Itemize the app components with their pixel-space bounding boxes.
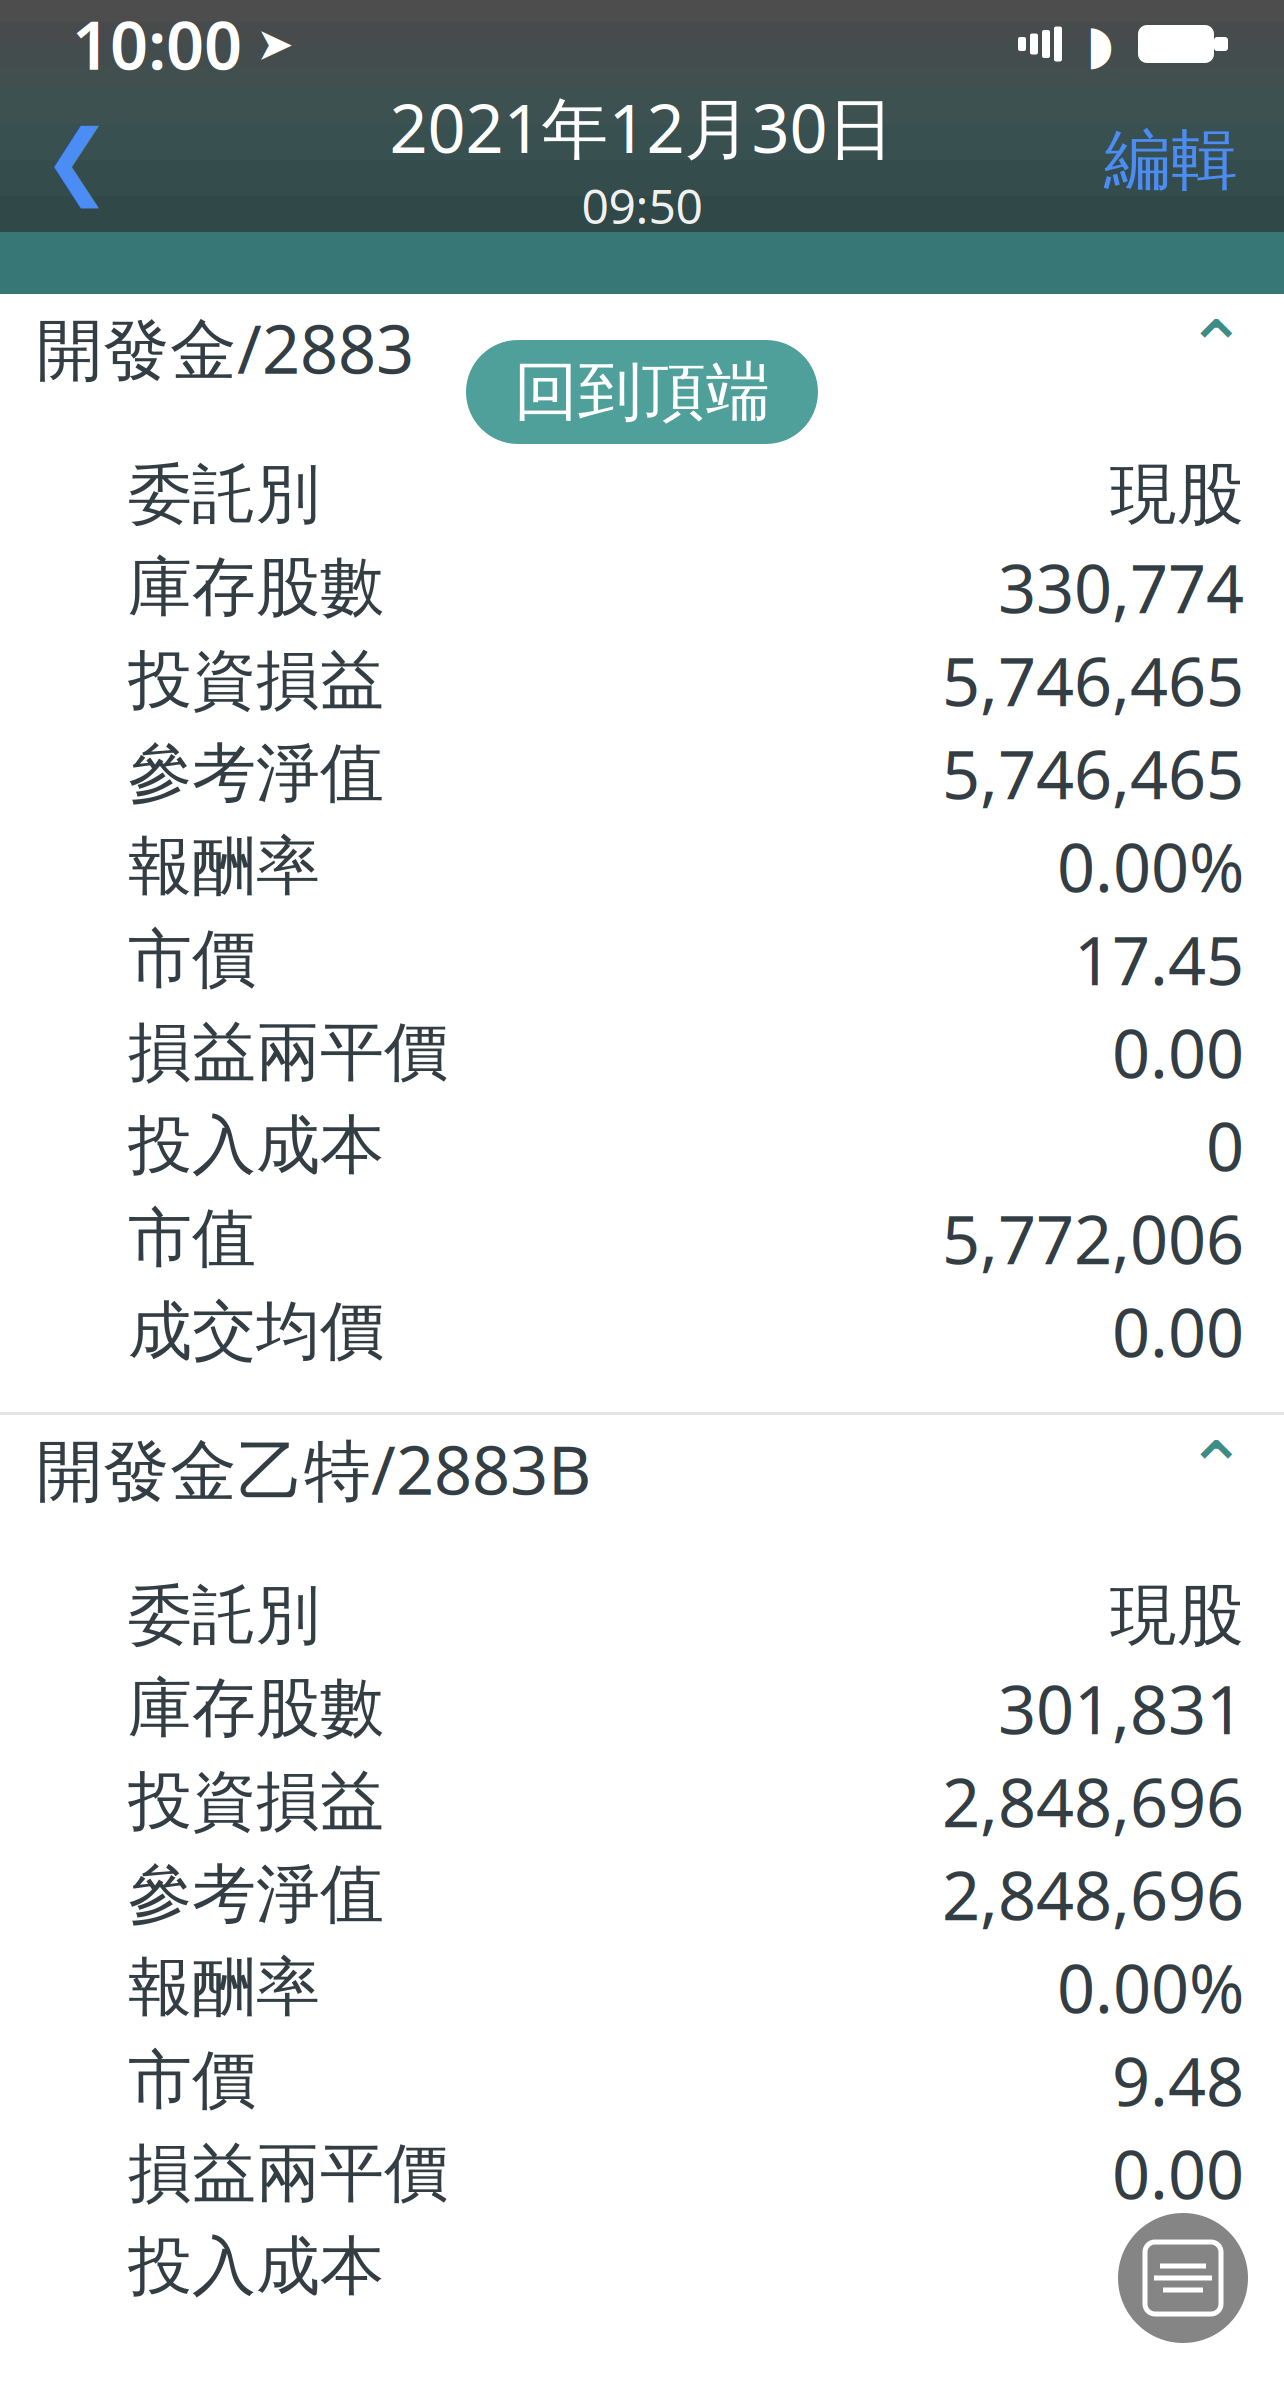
staticText: ➤ bbox=[256, 18, 294, 70]
staticText: 2,848,696 bbox=[942, 1850, 1244, 1939]
staticText: 5,772,006 bbox=[942, 1194, 1244, 1283]
staticText: ❮ bbox=[42, 113, 111, 207]
staticText: 5,746,465 bbox=[942, 729, 1244, 818]
staticText: 0.00% bbox=[1057, 822, 1244, 911]
staticText: 2,848,696 bbox=[942, 1757, 1244, 1846]
staticText: 0 bbox=[1206, 1101, 1244, 1190]
staticText: 09:50 bbox=[581, 173, 702, 237]
staticText: 庫存股數 bbox=[128, 548, 384, 627]
staticText: 現股 bbox=[1110, 454, 1244, 535]
staticText: 0.00% bbox=[1057, 1943, 1244, 2032]
staticText: 市價 bbox=[128, 2041, 256, 2120]
staticText: 庫存股數 bbox=[128, 1669, 384, 1748]
staticText: ⌃ bbox=[1185, 306, 1248, 390]
staticText: 投入成本 bbox=[128, 2227, 384, 2306]
staticText: 投入成本 bbox=[128, 1106, 384, 1185]
button[interactable]: 開發金乙特/2883B bbox=[0, 1415, 1284, 1523]
staticText: 投資損益 bbox=[128, 641, 384, 720]
staticText: 0.00 bbox=[1112, 1287, 1244, 1376]
button[interactable]: 編輯 bbox=[1080, 105, 1262, 215]
staticText: 投資損益 bbox=[128, 1762, 384, 1841]
staticText: 0.00 bbox=[1112, 1008, 1244, 1097]
staticText: 委託別 bbox=[128, 1576, 320, 1655]
staticText: 市價 bbox=[128, 920, 256, 999]
staticText: 9.48 bbox=[1112, 2036, 1244, 2125]
staticText: 現股 bbox=[1110, 1575, 1244, 1656]
staticText: 損益兩平價 bbox=[128, 1013, 448, 1092]
staticText: 0 bbox=[1206, 2222, 1244, 2311]
button[interactable]: 返回 bbox=[22, 105, 132, 215]
staticText: 損益兩平價 bbox=[128, 2134, 448, 2213]
staticText: 報酬率 bbox=[128, 827, 320, 906]
staticText: 回到頂端 bbox=[514, 353, 770, 431]
staticText: ⌃ bbox=[1185, 1427, 1248, 1511]
staticText: ◗ bbox=[1086, 14, 1114, 74]
staticText: 17.45 bbox=[1074, 915, 1244, 1004]
staticText: 參考淨值 bbox=[128, 734, 384, 813]
staticText: 開發金/2883 bbox=[36, 304, 414, 392]
staticText: 0.00 bbox=[1112, 2129, 1244, 2218]
staticText: 參考淨值 bbox=[128, 1855, 384, 1934]
button[interactable]: 掃描 bbox=[1118, 2213, 1248, 2343]
staticText: 開發金乙特/2883B bbox=[36, 1425, 591, 1513]
staticText: 5,746,465 bbox=[942, 636, 1244, 725]
staticText: 成交均價 bbox=[128, 1292, 384, 1371]
staticText: 301,831 bbox=[998, 1664, 1244, 1753]
staticText: 330,774 bbox=[998, 543, 1244, 632]
button[interactable]: 回到頂端 bbox=[466, 340, 818, 444]
staticText: 編輯 bbox=[1104, 119, 1238, 201]
staticText: 2021年12月30日 bbox=[389, 83, 894, 171]
staticText: 10:00 bbox=[72, 0, 242, 88]
staticText: 市值 bbox=[128, 1199, 256, 1278]
button[interactable]: 開發金/2883 bbox=[0, 294, 1284, 402]
staticText: 報酬率 bbox=[128, 1948, 320, 2027]
staticText: 委託別 bbox=[128, 455, 320, 534]
